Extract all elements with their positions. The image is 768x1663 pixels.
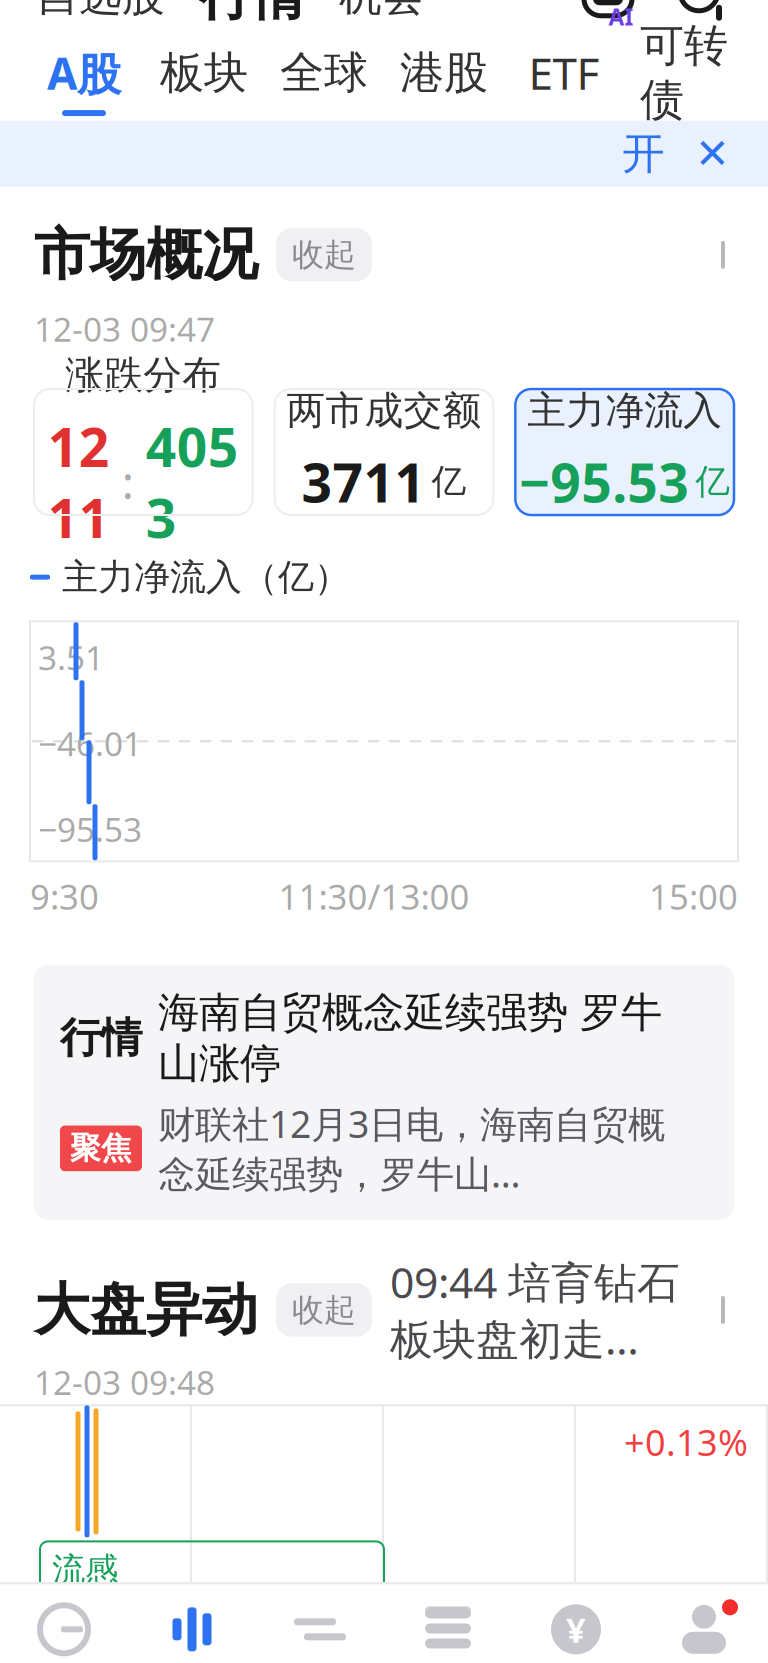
button[interactable]: ETF	[504, 43, 624, 116]
staticText: A股	[47, 43, 121, 102]
staticText: 市场概况	[34, 220, 258, 289]
staticText: AI	[608, 2, 633, 32]
staticText: 收起	[292, 1290, 356, 1330]
button[interactable]: 两市成交额	[275, 389, 493, 515]
staticText: 自选股	[36, 0, 165, 22]
button[interactable]: 涨跌分布	[34, 389, 253, 515]
staticText: −95.53	[38, 807, 142, 851]
button[interactable]: 发现	[0, 1582, 128, 1663]
button[interactable]: 行情	[0, 965, 768, 1220]
staticText: 机会	[339, 0, 425, 22]
button[interactable]: 主力净流入	[515, 389, 734, 515]
staticText: 开	[622, 128, 665, 180]
staticText: 全球	[280, 46, 368, 100]
staticText: 两市成交额	[286, 387, 481, 434]
staticText: −46.01	[38, 721, 142, 765]
button[interactable]: 我	[640, 1582, 768, 1663]
staticText: ETF	[528, 43, 599, 102]
button[interactable]: 板块	[144, 46, 264, 114]
staticText: 行情	[60, 1013, 142, 1063]
button[interactable]: 大盘异动	[0, 1272, 768, 1348]
button[interactable]: 行情	[128, 1582, 256, 1663]
staticText: 12-03 09:48	[34, 1360, 215, 1404]
staticText: ✕	[695, 130, 730, 177]
staticText: 11:30/13:00	[278, 873, 469, 919]
staticText: 3902.80	[36, 1352, 172, 1401]
button[interactable]: ¥	[512, 1582, 640, 1663]
button[interactable]: 搜索	[676, 0, 730, 23]
staticText: 亿	[695, 460, 730, 503]
button[interactable]: 关闭	[665, 130, 730, 177]
button[interactable]: 市场概况	[0, 217, 768, 293]
button[interactable]: 开	[622, 128, 665, 180]
staticText: −7971.36万	[52, 1594, 227, 1639]
button[interactable]: 行情	[165, 0, 305, 28]
staticText: 09:44 培育钻石板块盘初走…	[390, 1253, 680, 1367]
staticText: −95.53	[519, 446, 689, 517]
staticText: :	[110, 452, 146, 512]
staticText: 海南自贸概念延续强势 罗牛山涨停	[158, 987, 662, 1089]
staticText: 主力净流入	[527, 387, 722, 434]
staticText: 12-03 09:47	[34, 307, 215, 351]
staticText: 1211	[48, 411, 110, 553]
button[interactable]: A股	[24, 43, 144, 116]
button[interactable]: 机会	[305, 0, 425, 22]
button[interactable]: 可转债	[624, 19, 744, 141]
button[interactable]: 港股	[384, 46, 504, 114]
staticText: 3.51	[38, 635, 104, 679]
staticText: ¥	[566, 1606, 586, 1652]
staticText: 涨跌分布	[65, 351, 221, 399]
staticText: 财联社12月3日电，海南自贸概念延续强势，罗牛山…	[158, 1099, 665, 1198]
staticText: 行情	[199, 0, 305, 28]
staticText: +0.13%	[624, 1418, 748, 1466]
button[interactable]: 交易	[256, 1582, 384, 1663]
button[interactable]: AI 助手	[580, 0, 636, 24]
button[interactable]: ETF	[384, 1582, 512, 1663]
staticText: 聚焦	[70, 1130, 132, 1167]
staticText: 收起	[292, 235, 356, 274]
staticText: 流感	[52, 1549, 118, 1590]
staticText: 15:00	[649, 873, 738, 919]
button[interactable]: 全球	[264, 46, 384, 114]
staticText: 板块	[160, 46, 248, 100]
staticText: 港股	[400, 46, 488, 100]
button[interactable]: 自选股	[36, 0, 165, 22]
staticText: 3711	[301, 446, 425, 517]
staticText: 9:30	[30, 873, 99, 919]
staticText: 可转债	[640, 19, 728, 127]
staticText: 4053	[146, 411, 239, 553]
staticText: 主力净流入（亿）	[62, 555, 350, 599]
staticText: 亿	[431, 460, 466, 503]
staticText: 大盘异动	[34, 1276, 258, 1344]
